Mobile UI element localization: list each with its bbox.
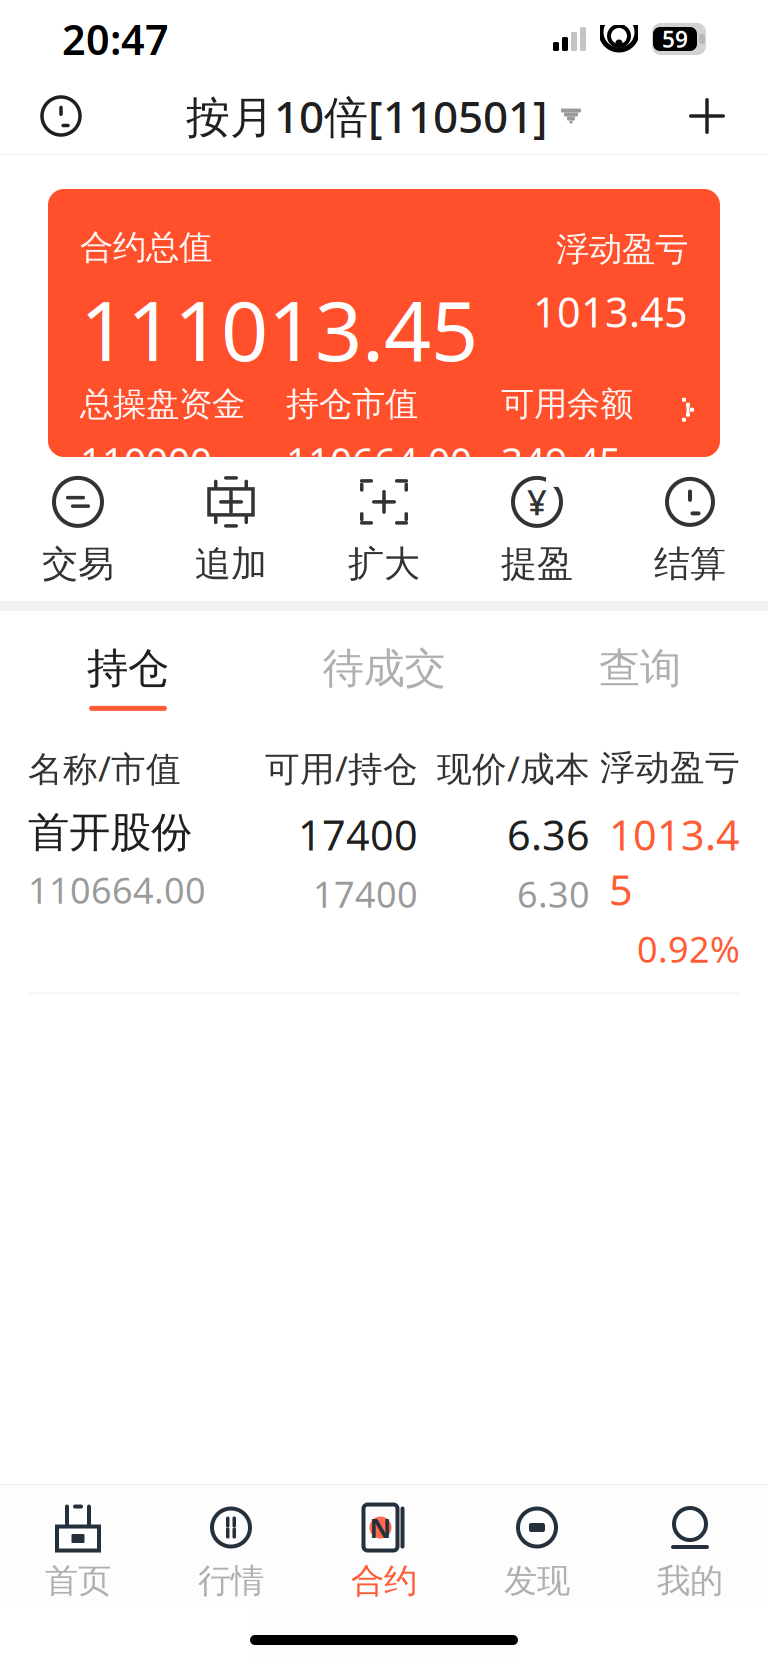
staticText: 按月10倍[110501] [186, 87, 548, 145]
staticText: 6.30 [517, 870, 590, 918]
staticText: ¥ [527, 479, 547, 525]
staticText: N [369, 1510, 391, 1545]
staticText: 1013.45 [609, 807, 740, 917]
button[interactable]: 结算 [613, 479, 766, 583]
staticText: 首页 [45, 1560, 111, 1601]
staticText: 110664.00 [286, 435, 472, 486]
staticText: 可用/持仓 [265, 745, 418, 791]
button[interactable]: History [26, 81, 96, 151]
staticText: 待成交 [322, 643, 445, 694]
staticText: 总操盘资金 [80, 384, 245, 425]
staticText: 349.45 [501, 435, 621, 486]
staticText: 查询 [599, 643, 681, 694]
staticText: 追加 [195, 542, 267, 586]
staticText: 名称/市值 [28, 745, 181, 791]
button[interactable]: N [307, 1501, 460, 1603]
button[interactable]: 追加 [154, 479, 307, 583]
button[interactable]: 行情 [154, 1501, 307, 1603]
button[interactable]: 按月10倍[110501] [186, 77, 582, 155]
button[interactable]: 合约总值 [48, 189, 720, 457]
staticText: 110000 [80, 435, 212, 486]
staticText: 合约 [351, 1560, 417, 1601]
staticText: 110664.00 [28, 866, 206, 914]
staticText: 交易 [42, 542, 114, 586]
staticText: 6.36 [507, 807, 590, 862]
button[interactable]: ¥ [460, 479, 613, 583]
button[interactable]: 发现 [460, 1501, 613, 1603]
staticText: 结算 [654, 542, 726, 586]
button[interactable]: 首开股份 [0, 807, 768, 993]
button[interactable]: 交易 [1, 479, 154, 583]
staticText: 首开股份 [28, 807, 192, 858]
staticText: 扩大 [348, 542, 420, 586]
button[interactable]: 查询 [512, 631, 768, 723]
staticText: 发现 [504, 1560, 570, 1601]
staticText: 合约总值 [80, 227, 212, 268]
staticText: 持仓 [87, 643, 169, 694]
button[interactable]: 首页 [1, 1501, 154, 1603]
staticText: 浮动盈亏 [556, 229, 688, 270]
staticText: 0.92% [637, 925, 740, 973]
staticText: 111013.45 [80, 274, 478, 384]
staticText: 59 [662, 24, 688, 54]
button[interactable]: Add [672, 81, 742, 151]
staticText: 1013.45 [533, 284, 688, 339]
button[interactable]: 待成交 [256, 631, 512, 723]
staticText: 20:47 [62, 12, 169, 66]
staticText: 浮动盈亏 [600, 747, 740, 789]
staticText: 现价/成本 [437, 745, 590, 791]
staticText: 我的 [657, 1560, 723, 1601]
staticText: 持仓市值 [286, 384, 418, 425]
staticText: 17400 [298, 807, 418, 862]
staticText: 行情 [198, 1560, 264, 1601]
staticText: 可用余额 [501, 384, 633, 425]
button[interactable]: 扩大 [307, 479, 460, 583]
button[interactable]: 我的 [613, 1501, 766, 1603]
staticText: 提盈 [501, 542, 573, 586]
staticText: 17400 [313, 870, 418, 918]
button[interactable]: 持仓 [0, 631, 256, 723]
